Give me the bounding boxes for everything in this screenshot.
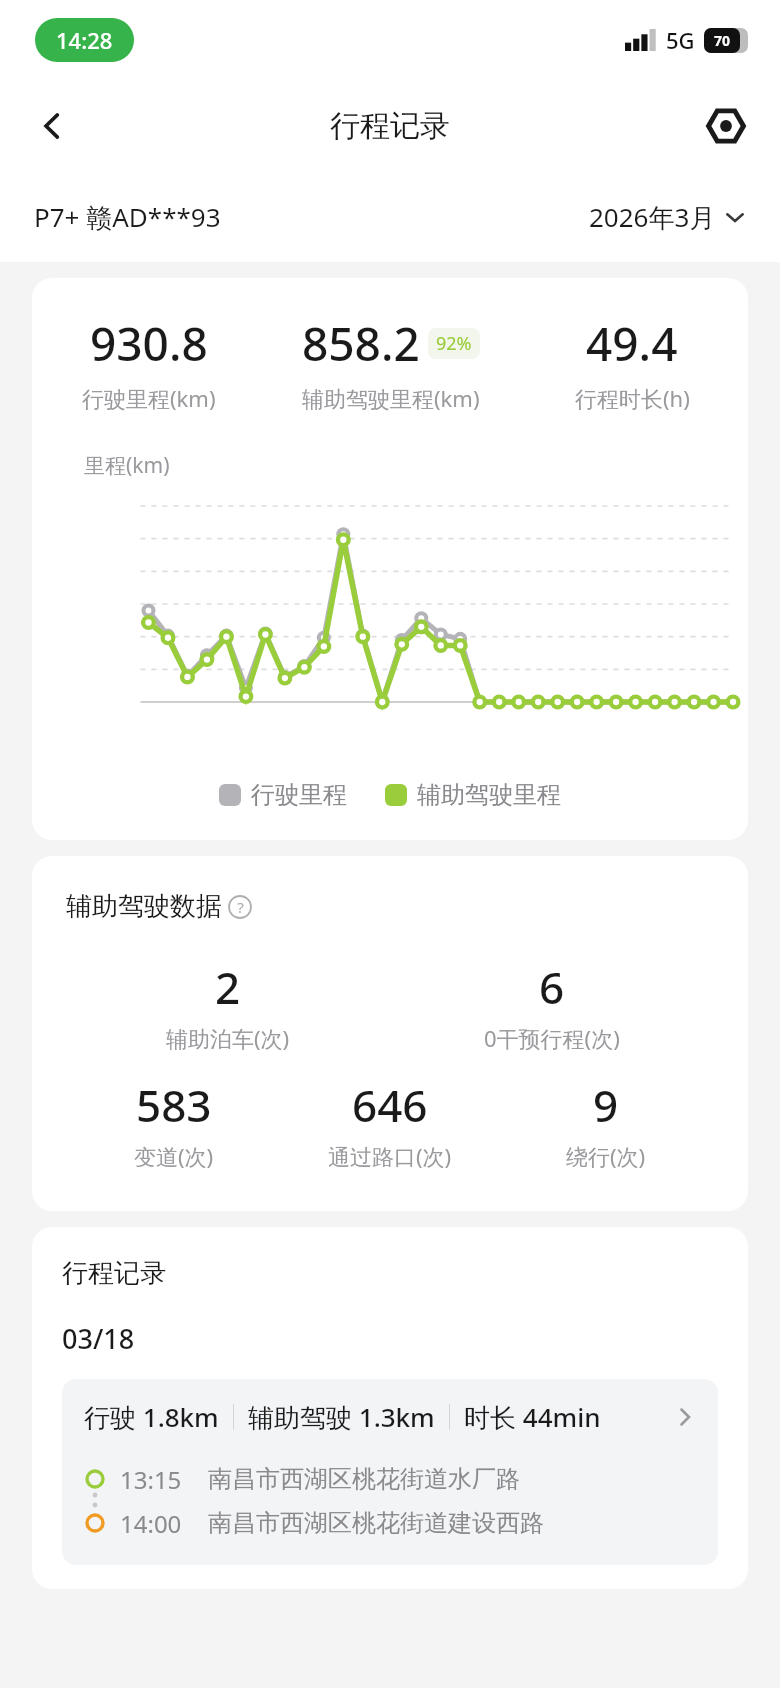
staticText: P7+ 赣AD***93	[34, 199, 221, 235]
staticText: 5G	[666, 25, 695, 55]
staticText: 6	[539, 957, 565, 1017]
staticText: 92%	[436, 331, 472, 356]
staticText: 南昌市西湖区桃花街道水厂路	[208, 1464, 520, 1494]
staticText: 辅助泊车(次)	[166, 1023, 290, 1053]
staticText: 583	[136, 1075, 212, 1135]
button[interactable]: Settings	[698, 98, 754, 154]
staticText: 辅助驾驶里程(km)	[302, 383, 480, 413]
staticText: 14:28	[56, 25, 113, 55]
staticText: 通过路口(次)	[328, 1141, 452, 1171]
staticText: 646	[352, 1075, 428, 1135]
staticText: 行驶里程	[251, 780, 347, 810]
button[interactable]: Back	[24, 98, 80, 154]
staticText: 行程记录	[62, 1257, 166, 1290]
staticText: 2026年3月	[589, 199, 716, 235]
staticText: 辅助驾驶数据	[66, 890, 222, 923]
staticText: 里程(km)	[84, 451, 170, 480]
staticText: 行驶里程(km)	[82, 383, 216, 413]
staticText: 行程记录	[330, 107, 450, 145]
button[interactable]: 行驶 1.8km	[62, 1379, 718, 1565]
button[interactable]: Help	[228, 895, 252, 919]
staticText: 辅助驾驶里程	[417, 780, 561, 810]
button[interactable]: 2026年3月	[589, 199, 746, 235]
staticText: 辅助驾驶 1.3km	[248, 1399, 435, 1435]
staticText: 70	[714, 31, 731, 50]
staticText: 行驶 1.8km	[84, 1399, 219, 1435]
staticText: 南昌市西湖区桃花街道建设西路	[208, 1508, 544, 1538]
staticText: 时长 44min	[464, 1399, 601, 1435]
staticText: 49.4	[586, 312, 678, 375]
staticText: ?	[237, 897, 244, 917]
staticText: 2	[215, 957, 241, 1017]
staticText: 14:00	[120, 1507, 182, 1540]
staticText: 行程时长(h)	[575, 383, 690, 413]
staticText: 03/18	[62, 1320, 135, 1357]
staticText: 930.8	[90, 312, 208, 375]
staticText: 变道(次)	[134, 1141, 214, 1171]
staticText: 0干预行程(次)	[484, 1023, 620, 1053]
staticText: 9	[593, 1075, 619, 1135]
staticText: 858.2	[302, 312, 420, 375]
staticText: 13:15	[120, 1463, 182, 1496]
staticText: 绕行(次)	[566, 1141, 646, 1171]
